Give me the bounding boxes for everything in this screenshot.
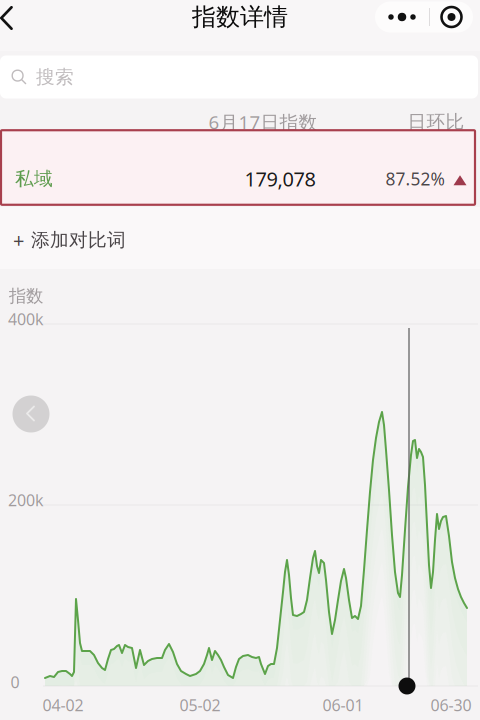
- button[interactable]: Previous period: [11, 394, 51, 434]
- staticText: 0: [10, 671, 19, 693]
- button[interactable]: Back: [0, 0, 26, 38]
- button[interactable]: 私域: [1, 130, 475, 205]
- staticText: 指数详情: [192, 2, 288, 32]
- staticText: 日环比: [407, 110, 464, 133]
- staticText: 06-30: [430, 694, 471, 716]
- staticText: 87.52%: [385, 167, 444, 190]
- staticText: 06-01: [322, 694, 363, 716]
- staticText: 私域: [15, 167, 53, 190]
- staticText: 179,078: [244, 165, 315, 192]
- staticText: +: [13, 227, 24, 253]
- staticText: 200k: [8, 489, 44, 511]
- staticText: 6月17日指数: [208, 110, 317, 134]
- staticText: 指数: [9, 285, 43, 307]
- button[interactable]: +: [0, 212, 480, 268]
- staticText: 05-02: [179, 694, 220, 716]
- staticText: 400k: [8, 308, 44, 330]
- staticText: 04-02: [42, 694, 83, 716]
- staticText: 添加对比词: [31, 228, 126, 251]
- staticText: 搜索: [36, 65, 74, 88]
- button[interactable]: Close: [430, 1, 473, 32]
- button[interactable]: More: [375, 1, 429, 32]
